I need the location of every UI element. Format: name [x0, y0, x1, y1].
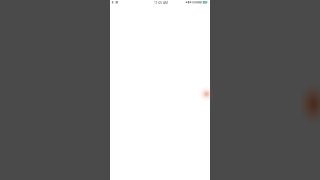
button[interactable]: Compose	[201, 88, 213, 100]
staticText: 11:05 AM	[154, 1, 169, 5]
